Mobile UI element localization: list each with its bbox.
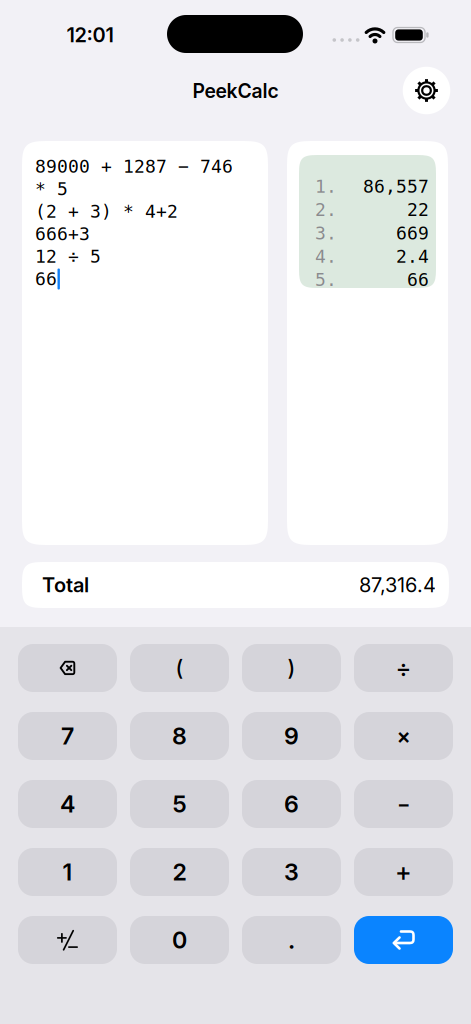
staticText: ( xyxy=(175,655,183,681)
staticText: 3 xyxy=(284,858,299,886)
staticText: 3. xyxy=(315,223,337,244)
staticText: + xyxy=(395,857,412,887)
button[interactable]: + xyxy=(354,848,453,896)
button[interactable]: 4 xyxy=(18,780,117,828)
staticText: PeekCalc xyxy=(192,79,278,103)
staticText: 89000 + 1287 − 746 xyxy=(35,156,233,177)
button[interactable]: ( xyxy=(130,644,229,692)
staticText: * 5 xyxy=(35,178,68,199)
staticText: 12 ÷ 5 xyxy=(35,246,101,267)
staticText: 66 xyxy=(407,269,429,290)
button[interactable]: Delete xyxy=(18,644,117,692)
staticText: 2. xyxy=(315,199,337,220)
staticText: 5. xyxy=(315,269,337,290)
staticText: 2 xyxy=(172,858,186,886)
button[interactable]: − xyxy=(354,780,453,828)
staticText: ÷ xyxy=(395,653,411,682)
staticText: 12:01 xyxy=(66,23,113,47)
staticText: 1 xyxy=(62,858,72,886)
button[interactable]: ) xyxy=(242,644,341,692)
staticText: 5 xyxy=(172,790,186,818)
staticText: 7 xyxy=(61,722,74,750)
button[interactable]: × xyxy=(354,712,453,760)
button[interactable]: 1 xyxy=(18,848,117,896)
staticText: 669 xyxy=(396,223,429,244)
staticText: 4. xyxy=(315,246,337,267)
staticText: 86,557 xyxy=(363,176,429,197)
staticText: (2 + 3) * 4+2 xyxy=(35,201,178,222)
staticText: Total xyxy=(42,573,89,597)
button[interactable]: 7 xyxy=(18,712,117,760)
staticText: 2.4 xyxy=(396,246,429,267)
staticText: 0 xyxy=(172,926,187,954)
button[interactable]: 0 xyxy=(130,916,229,964)
staticText: 87,316.4 xyxy=(359,573,436,597)
button[interactable]: 2 xyxy=(130,848,229,896)
button[interactable]: Settings xyxy=(403,67,450,114)
staticText: 6 xyxy=(284,790,299,818)
staticText: ) xyxy=(287,655,295,681)
button[interactable]: 6 xyxy=(242,780,341,828)
button[interactable]: Plus Minus xyxy=(18,916,117,964)
staticText: . xyxy=(288,925,295,954)
staticText: 1. xyxy=(315,176,337,197)
button[interactable]: 3 xyxy=(242,848,341,896)
staticText: × xyxy=(396,723,410,749)
staticText: 4 xyxy=(60,790,75,818)
button[interactable]: 5 xyxy=(130,780,229,828)
button[interactable]: ÷ xyxy=(354,644,453,692)
staticText: − xyxy=(397,792,410,816)
staticText: 8 xyxy=(172,722,187,750)
button[interactable]: 9 xyxy=(242,712,341,760)
button[interactable]: 8 xyxy=(130,712,229,760)
button[interactable]: Return xyxy=(354,916,453,964)
staticText: 666+3 xyxy=(35,223,90,244)
staticText: 66 xyxy=(35,268,57,289)
staticText: 9 xyxy=(284,722,299,750)
staticText: 22 xyxy=(407,199,429,220)
button[interactable]: . xyxy=(242,916,341,964)
